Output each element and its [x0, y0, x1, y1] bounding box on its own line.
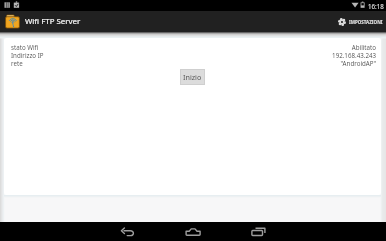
- button[interactable]: Home: [179, 222, 207, 241]
- staticText: stato Wifi: [11, 43, 39, 51]
- staticText: 192.168.43.243: [332, 51, 376, 59]
- staticText: 16:18: [368, 2, 384, 10]
- other: Settings: [338, 18, 346, 26]
- staticText: Wifi FTP Server: [25, 16, 81, 27]
- staticText: rete: [11, 59, 23, 67]
- staticText: Abilitato: [351, 43, 376, 51]
- button[interactable]: Inizio: [180, 69, 205, 85]
- staticText: Indirizzo IP: [11, 51, 44, 59]
- button[interactable]: Settings: [337, 16, 383, 28]
- staticText: "AndroidAP": [340, 59, 376, 67]
- staticText: IMPOSTAZIONI: [349, 19, 383, 25]
- button[interactable]: Recent apps: [244, 222, 272, 241]
- button[interactable]: Back: [114, 222, 142, 241]
- staticText: Inizio: [183, 72, 202, 82]
